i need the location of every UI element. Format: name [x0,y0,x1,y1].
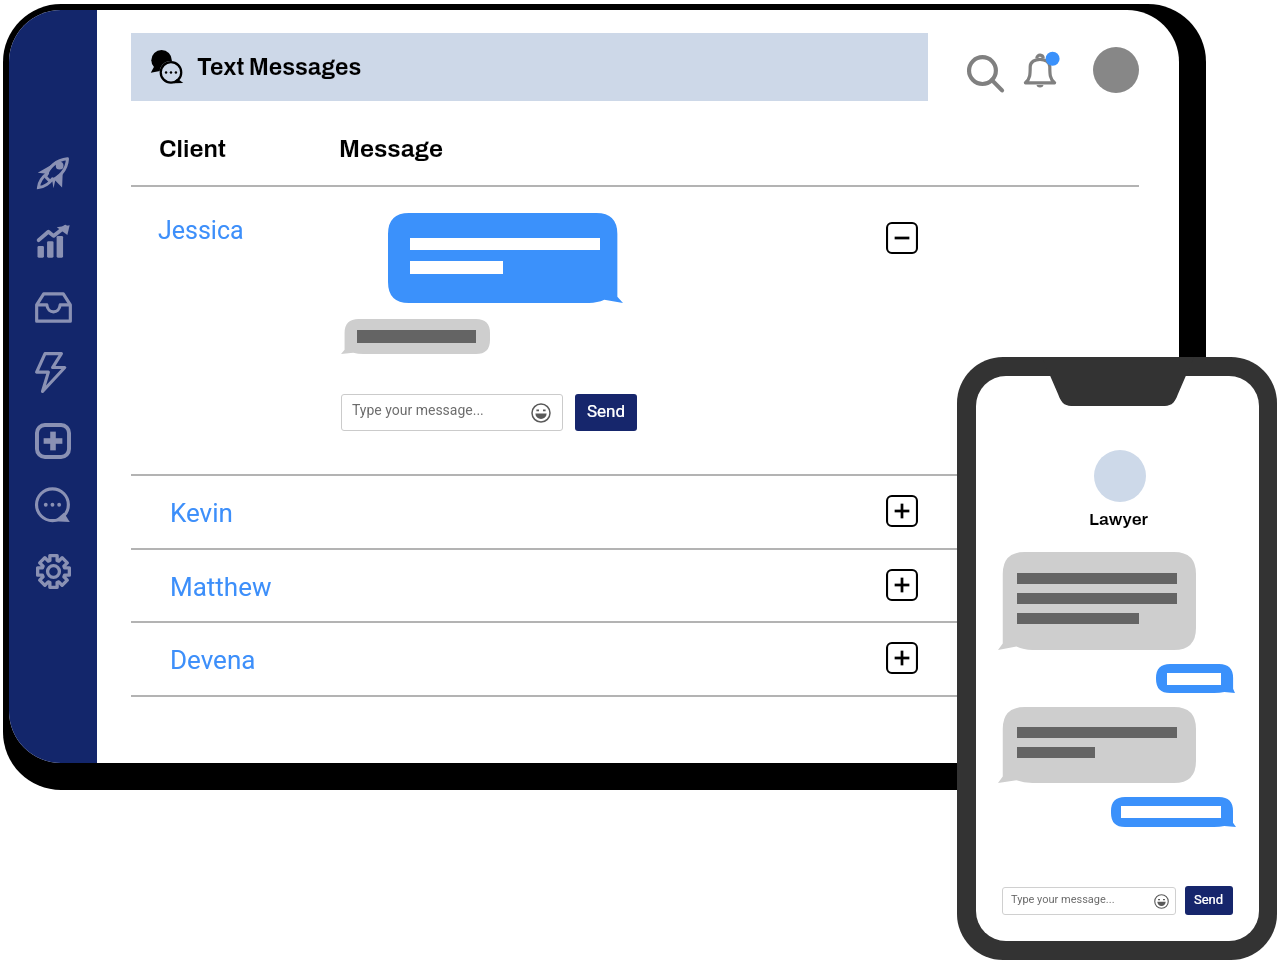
button[interactable]: Add [35,423,71,459]
staticText: Kevin [170,498,233,528]
button[interactable]: Collapse conversation [886,222,918,254]
button[interactable] [131,187,1139,474]
button[interactable]: Text Messages [131,33,928,101]
button[interactable]: Notifications [1022,49,1062,89]
staticText: Matthew [170,572,272,602]
button[interactable]: Expand conversation [886,642,918,674]
button[interactable]: Settings [35,553,72,590]
button[interactable]: Matthew [131,548,1139,621]
staticText: Send [587,401,626,421]
button[interactable]: Inbox [35,289,72,326]
button[interactable]: Send [575,394,637,431]
staticText: Devena [170,645,256,675]
button[interactable]: Type your message... [341,394,563,431]
staticText: Type your message... [1011,893,1154,906]
button[interactable]: Automations [32,352,74,394]
button[interactable]: Kevin [131,474,1139,548]
staticText: Text Messages [197,55,362,80]
button[interactable]: Analytics [37,225,70,258]
button[interactable]: Search [962,53,1006,97]
staticText: Message [339,136,444,162]
staticText: Type your message... [352,402,531,418]
button[interactable]: Devena [131,621,1139,695]
staticText: Lawyer [977,510,1259,528]
button[interactable]: Profile [1093,47,1139,93]
button[interactable]: Send [1185,886,1233,915]
staticText: Send [1194,892,1224,907]
button[interactable]: Messages [36,489,71,524]
button[interactable]: Expand conversation [886,495,918,527]
button[interactable]: Launch [36,156,71,191]
staticText: Client [159,136,227,162]
button[interactable]: Type your message... [1002,887,1176,915]
staticText: Jessica [158,216,244,245]
button[interactable]: Expand conversation [886,569,918,601]
